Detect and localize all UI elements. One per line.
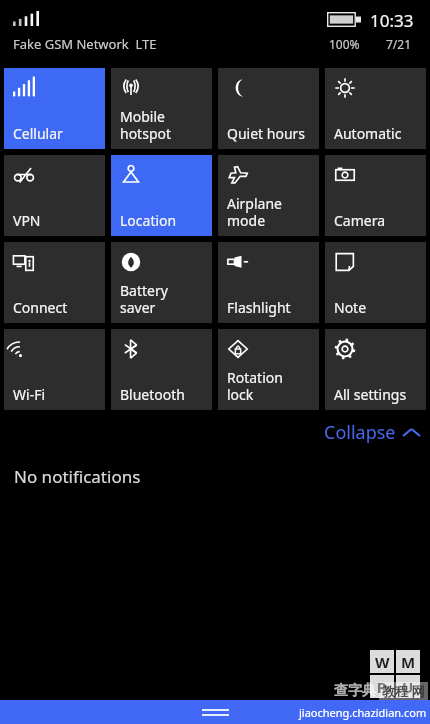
staticText: Bluetooth xyxy=(120,385,185,404)
staticText: VPN xyxy=(13,211,41,230)
staticText: Airplane mode xyxy=(227,194,282,230)
button[interactable]: All settings xyxy=(325,329,426,410)
staticText: U xyxy=(402,677,414,697)
staticText: Camera xyxy=(334,211,386,230)
button[interactable]: Collapse xyxy=(314,416,430,449)
staticText: Note xyxy=(334,298,367,317)
staticText: 100% xyxy=(329,36,360,52)
staticText: W xyxy=(375,652,390,672)
staticText: M xyxy=(401,652,416,672)
staticText: Wi-Fi xyxy=(13,385,46,404)
button[interactable]: Wi-Fi xyxy=(4,329,105,410)
staticText: Location xyxy=(120,211,177,230)
button[interactable]: Note xyxy=(325,242,426,323)
button[interactable]: Flashlight xyxy=(218,242,319,323)
button[interactable]: Location xyxy=(111,155,212,236)
staticText: No notifications xyxy=(14,465,141,488)
staticText: Flashlight xyxy=(227,298,291,317)
button[interactable]: Mobile hotspot xyxy=(111,68,212,149)
staticText: Mobile hotspot xyxy=(120,107,172,143)
staticText: P xyxy=(377,677,387,697)
staticText: All settings xyxy=(334,385,407,404)
staticText: 查字典 xyxy=(334,682,376,700)
staticText: 7/21 xyxy=(386,36,412,52)
button[interactable]: Battery saver xyxy=(111,242,212,323)
staticText: Connect xyxy=(13,298,68,317)
staticText: Cellular xyxy=(13,124,63,143)
button[interactable]: Camera xyxy=(325,155,426,236)
staticText: Battery saver xyxy=(120,281,168,317)
button[interactable]: Bluetooth xyxy=(111,329,212,410)
staticText: Automatic xyxy=(334,124,402,143)
staticText: jiaocheng.chazidian.com xyxy=(299,705,427,720)
staticText: 教程 网 xyxy=(382,682,425,700)
button[interactable]: Quiet hours xyxy=(218,68,319,149)
button[interactable]: Connect xyxy=(4,242,105,323)
button[interactable]: VPN xyxy=(4,155,105,236)
staticText: Rotation lock xyxy=(227,368,283,404)
staticText: Fake GSM Network LTE xyxy=(13,35,157,53)
button[interactable]: Home xyxy=(196,703,235,722)
button[interactable]: Airplane mode xyxy=(218,155,319,236)
staticText: 10:33 xyxy=(370,9,414,32)
button[interactable]: Cellular xyxy=(4,68,105,149)
button[interactable]: Automatic xyxy=(325,68,426,149)
button[interactable]: Rotation lock xyxy=(218,329,319,410)
staticText: Collapse xyxy=(324,420,396,445)
staticText: Quiet hours xyxy=(227,124,306,143)
